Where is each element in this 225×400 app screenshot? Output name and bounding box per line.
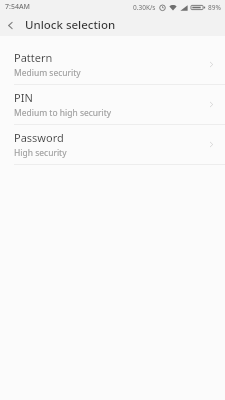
button[interactable]: Password (0, 125, 225, 164)
staticText: Medium to high security (14, 107, 112, 119)
staticText: Password (14, 130, 64, 145)
staticText: Pattern (14, 50, 53, 65)
staticText: High security (14, 147, 67, 159)
staticText: Unlock selection (25, 17, 116, 33)
staticText: 7:54AM (5, 2, 30, 12)
staticText: 89% (208, 3, 221, 12)
button[interactable]: Pattern (0, 45, 225, 84)
button[interactable]: Back (0, 15, 21, 36)
button[interactable]: PIN (0, 85, 225, 124)
staticText: 0.30K/s (133, 3, 156, 12)
staticText: PIN (14, 90, 33, 105)
staticText: Medium security (14, 67, 81, 79)
